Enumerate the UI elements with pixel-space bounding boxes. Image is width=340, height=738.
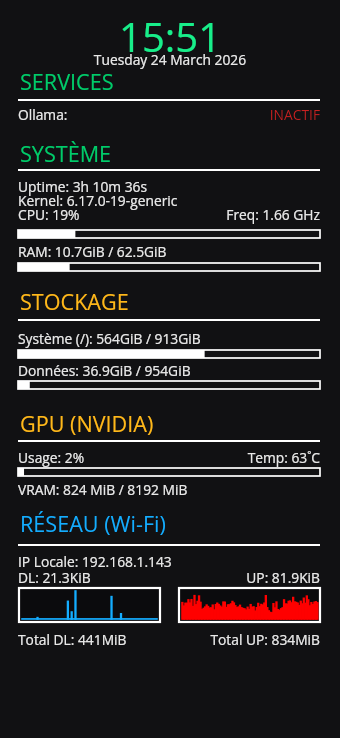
- staticText: CPU: 19%: [18, 205, 80, 224]
- staticText: UP: 81.9KiB: [0, 568, 320, 587]
- staticText: Total DL: 441MiB: [18, 630, 127, 649]
- staticText: IP Locale: 192.168.1.143: [18, 552, 172, 571]
- staticText: Usage: 2%: [18, 448, 85, 467]
- staticText: Uptime: 3h 10m 36s: [18, 177, 148, 196]
- staticText: Système (/): 564GiB / 913GiB: [18, 329, 201, 348]
- staticText: SYSTÈME: [20, 139, 112, 168]
- staticText: RAM: 10.7GiB / 62.5GiB: [18, 242, 167, 261]
- staticText: 15:51: [0, 9, 340, 63]
- staticText: INACTIF: [0, 105, 320, 124]
- staticText: STOCKAGE: [20, 287, 129, 316]
- staticText: Temp: 63˚C: [0, 448, 320, 467]
- staticText: Kernel: 6.17.0-19-generic: [18, 191, 178, 210]
- staticText: Données: 36.9GiB / 954GiB: [18, 361, 191, 380]
- staticText: GPU (NVIDIA): [20, 409, 154, 438]
- staticText: Freq: 1.66 GHz: [0, 205, 320, 224]
- staticText: DL: 21.3KiB: [18, 568, 91, 587]
- staticText: Tuesday 24 March 2026: [0, 50, 340, 69]
- staticText: RÉSEAU (Wi-Fi): [20, 509, 166, 538]
- staticText: SERVICES: [20, 67, 114, 96]
- staticText: Ollama:: [18, 105, 68, 124]
- staticText: Total UP: 834MiB: [0, 630, 320, 649]
- other: Upload history graph: [179, 588, 320, 622]
- staticText: VRAM: 824 MiB / 8192 MiB: [18, 480, 188, 499]
- other: Download history graph: [19, 588, 160, 622]
